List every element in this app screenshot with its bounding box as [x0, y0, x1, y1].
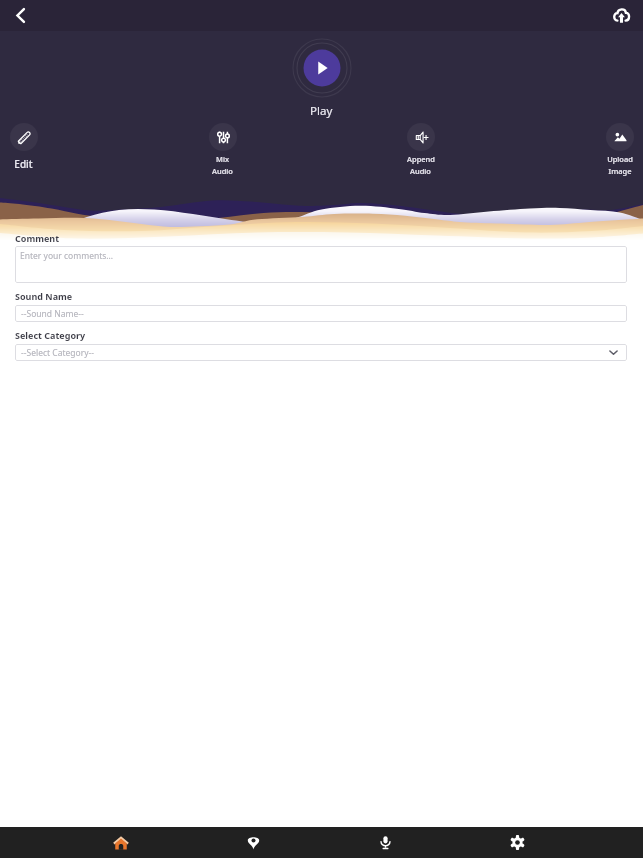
button[interactable]: Upload [596, 123, 643, 176]
staticText: Select Category [15, 329, 86, 341]
button[interactable]: Record [319, 827, 451, 858]
staticText: Mix [216, 154, 229, 164]
staticText: Comment [15, 232, 60, 244]
button[interactable]: Enter your comments... [15, 246, 627, 283]
staticText: Enter your comments... [20, 250, 114, 262]
button[interactable]: Back [0, 0, 40, 31]
button[interactable]: Play [292, 38, 352, 98]
button[interactable]: Edit [0, 123, 47, 171]
button[interactable]: --Select Category-- [15, 344, 627, 361]
staticText: Audio [410, 166, 431, 176]
button[interactable]: --Sound Name-- [15, 305, 627, 322]
staticText: Append [407, 154, 435, 164]
staticText: Audio [212, 166, 233, 176]
button[interactable]: Append [397, 123, 444, 176]
button[interactable]: Places [187, 827, 319, 858]
staticText: Edit [14, 157, 33, 171]
staticText: --Sound Name-- [21, 308, 84, 320]
button[interactable]: Upload to cloud [599, 0, 643, 31]
button[interactable]: Mix [199, 123, 246, 176]
button[interactable]: Home [55, 827, 187, 858]
staticText: Upload [607, 154, 633, 164]
staticText: Play [310, 103, 333, 119]
staticText: Image [608, 166, 632, 176]
staticText: --Select Category-- [21, 347, 94, 359]
button[interactable]: Settings [451, 827, 583, 858]
staticText: Sound Name [15, 290, 73, 302]
